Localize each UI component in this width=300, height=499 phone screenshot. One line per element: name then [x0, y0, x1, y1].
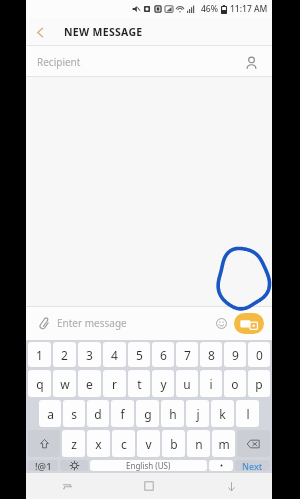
- staticText: l: [246, 406, 250, 422]
- staticText: English (US): [126, 460, 171, 471]
- button[interactable]: m: [212, 430, 235, 457]
- button[interactable]: i: [200, 370, 222, 397]
- button[interactable]: j: [186, 400, 209, 427]
- staticText: o: [231, 376, 239, 392]
- button[interactable]: l: [236, 400, 259, 427]
- staticText: c: [121, 436, 127, 452]
- staticText: u: [183, 376, 191, 392]
- staticText: y: [160, 376, 167, 392]
- button[interactable]: 7: [176, 342, 198, 367]
- button[interactable]: 5: [128, 342, 150, 367]
- button[interactable]: q: [28, 370, 51, 397]
- button[interactable]: y: [152, 370, 174, 397]
- staticText: NEW MESSAGE: [64, 25, 143, 39]
- staticText: i: [209, 376, 213, 392]
- button[interactable]: 0: [248, 342, 270, 367]
- button[interactable]: r: [103, 370, 126, 397]
- staticText: 7: [184, 347, 191, 363]
- staticText: d: [94, 406, 102, 422]
- button[interactable]: d: [87, 400, 109, 427]
- button[interactable]: 8: [200, 342, 222, 367]
- button[interactable]: p: [248, 370, 270, 397]
- button[interactable]: h: [161, 400, 184, 427]
- staticText: p: [255, 376, 263, 392]
- button[interactable]: 6: [152, 342, 174, 367]
- button[interactable]: c: [112, 430, 135, 457]
- staticText: 0: [256, 347, 263, 363]
- staticText: Next: [242, 460, 263, 471]
- button[interactable]: s: [63, 400, 85, 427]
- button[interactable]: t: [128, 370, 150, 397]
- staticText: z: [71, 436, 77, 452]
- button[interactable]: Home: [108, 473, 190, 499]
- button[interactable]: w: [53, 370, 76, 397]
- button[interactable]: 9: [224, 342, 246, 367]
- button[interactable]: Recents: [26, 473, 108, 499]
- button[interactable]: g: [136, 400, 159, 427]
- staticText: 5: [136, 347, 143, 363]
- staticText: v: [145, 436, 152, 452]
- button[interactable]: Hide keyboard: [190, 473, 272, 499]
- staticText: !@1: [35, 460, 52, 471]
- button[interactable]: 4: [103, 342, 126, 367]
- staticText: 8: [208, 347, 215, 363]
- button[interactable]: z: [62, 430, 85, 457]
- button[interactable]: u: [176, 370, 198, 397]
- staticText: 4: [111, 347, 118, 363]
- staticText: w: [60, 376, 70, 392]
- staticText: 2: [61, 347, 68, 363]
- button[interactable]: Key: [28, 430, 60, 457]
- button[interactable]: v: [137, 430, 160, 457]
- staticText: e: [86, 376, 93, 392]
- staticText: Enter message: [57, 316, 212, 330]
- staticText: j: [196, 406, 200, 422]
- staticText: 9: [232, 347, 239, 363]
- button[interactable]: 3: [78, 342, 101, 367]
- button[interactable]: k: [211, 400, 234, 427]
- staticText: Recipient: [37, 55, 241, 69]
- button[interactable]: 2: [53, 342, 76, 367]
- button[interactable]: Attach file: [34, 313, 54, 333]
- button[interactable]: f: [111, 400, 134, 427]
- button[interactable]: !@1: [28, 460, 58, 471]
- staticText: t: [137, 376, 142, 392]
- button[interactable]: Emoji: [212, 314, 230, 332]
- staticText: 6: [160, 347, 167, 363]
- staticText: x: [95, 436, 102, 452]
- button[interactable]: Key: [60, 460, 88, 471]
- button[interactable]: English (US): [90, 460, 207, 471]
- button[interactable]: Period: [209, 460, 233, 471]
- staticText: 46%: [201, 3, 218, 15]
- staticText: s: [71, 406, 77, 422]
- button[interactable]: Next: [235, 460, 270, 471]
- staticText: g: [144, 406, 152, 422]
- button[interactable]: Add recipient from contacts: [241, 52, 261, 72]
- button[interactable]: a: [39, 400, 61, 427]
- staticText: a: [47, 406, 54, 422]
- staticText: f: [120, 406, 125, 422]
- staticText: q: [36, 376, 44, 392]
- staticText: h: [169, 406, 177, 422]
- staticText: n: [195, 436, 203, 452]
- staticText: m: [218, 436, 230, 452]
- staticText: 1: [36, 347, 43, 363]
- staticText: 11:17 AM: [230, 3, 268, 15]
- button[interactable]: o: [224, 370, 246, 397]
- button[interactable]: x: [87, 430, 110, 457]
- staticText: r: [112, 376, 117, 392]
- button[interactable]: e: [78, 370, 101, 397]
- staticText: k: [219, 406, 226, 422]
- button[interactable]: 1: [28, 342, 51, 367]
- staticText: b: [170, 436, 178, 452]
- button[interactable]: Add media: [234, 313, 264, 334]
- staticText: 3: [86, 347, 93, 363]
- button[interactable]: b: [162, 430, 185, 457]
- button[interactable]: Back: [26, 18, 54, 46]
- button[interactable]: n: [187, 430, 210, 457]
- button[interactable]: Key: [237, 430, 270, 457]
